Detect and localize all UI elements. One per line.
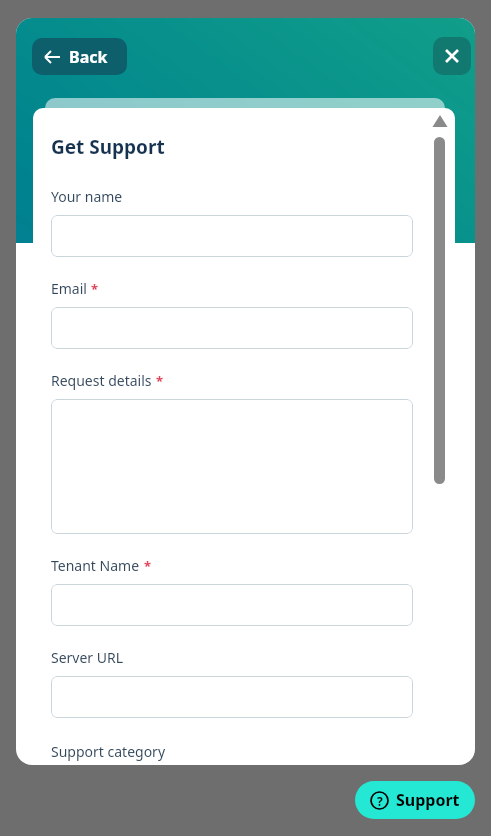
staticText: * — [91, 280, 99, 298]
staticText: Get Support — [51, 134, 165, 160]
staticText: Server URL — [51, 648, 124, 667]
button[interactable]: Close — [433, 37, 471, 75]
staticText: Your name — [51, 187, 123, 206]
button[interactable] — [51, 676, 413, 718]
button[interactable]: Back — [32, 38, 127, 75]
button[interactable]: ? — [355, 781, 475, 819]
staticText: * — [144, 557, 152, 575]
button[interactable] — [51, 215, 413, 257]
staticText: Request details — [51, 371, 152, 390]
staticText: Support — [396, 789, 460, 811]
staticText: Tenant Name — [51, 556, 140, 575]
staticText: * — [156, 372, 164, 390]
staticText: ? — [377, 793, 383, 809]
button[interactable] — [51, 399, 413, 534]
button[interactable] — [51, 307, 413, 349]
button[interactable] — [51, 584, 413, 626]
staticText: Back — [69, 46, 108, 68]
staticText: Email — [51, 279, 87, 298]
staticText: Support category — [51, 742, 166, 761]
